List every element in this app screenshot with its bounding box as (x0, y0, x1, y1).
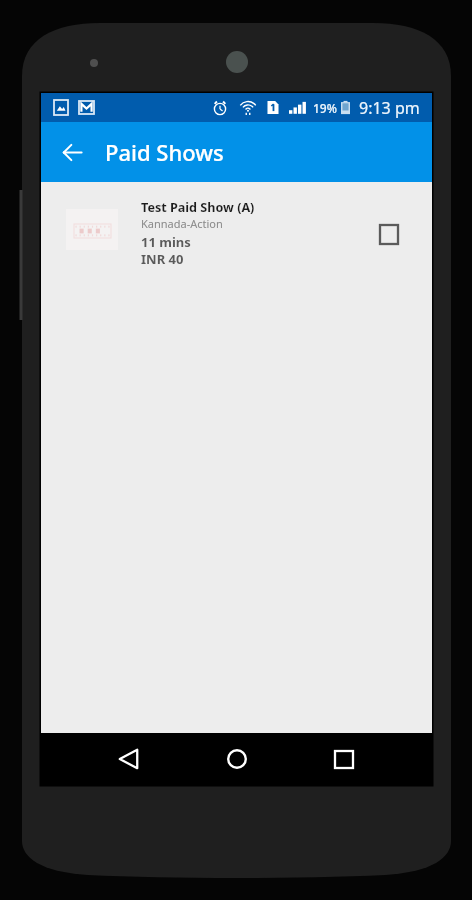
button[interactable]: Back (52, 132, 92, 172)
staticText: 19% (313, 100, 337, 116)
staticText: Test Paid Show (A) (141, 199, 255, 216)
staticText: 11 mins (141, 233, 191, 251)
button[interactable]: Select show (367, 212, 411, 256)
staticText: 9:13 pm (359, 97, 420, 119)
button[interactable]: Back (104, 737, 152, 781)
button[interactable]: Test Paid Show (A) (41, 182, 432, 272)
staticText: Kannada-Action (141, 216, 223, 231)
button[interactable]: Home (213, 737, 261, 781)
staticText: INR 40 (141, 250, 184, 268)
staticText: Paid Shows (105, 137, 224, 167)
button[interactable]: Recent apps (320, 737, 368, 781)
